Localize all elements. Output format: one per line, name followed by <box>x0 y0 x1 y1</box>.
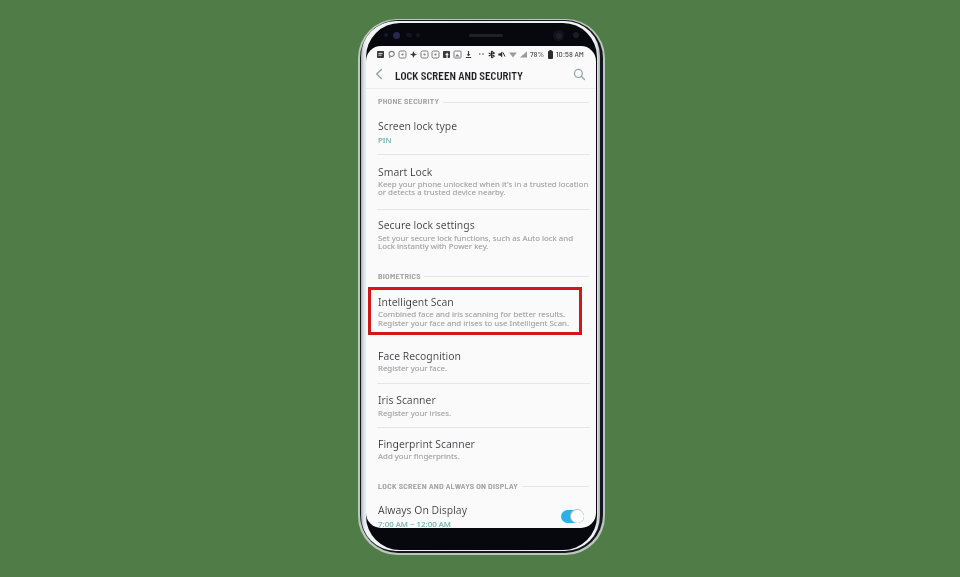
staticText: 7:00 AM ~ 12:00 AM <box>378 519 451 528</box>
staticText: Set your secure lock functions, such as … <box>378 233 574 244</box>
staticText: Keep your phone unlocked when it's in a … <box>378 179 589 190</box>
button[interactable]: Smart Lock <box>366 155 596 209</box>
staticText: Intelligent Scan <box>378 295 454 309</box>
staticText: or detects a trusted device nearby. <box>378 187 506 198</box>
staticText: PHONE SECURITY <box>378 96 440 106</box>
staticText: LOCK SCREEN AND SECURITY <box>395 69 524 82</box>
button[interactable]: Always On Display <box>366 498 596 528</box>
staticText: Screen lock type <box>378 119 458 133</box>
staticText: Iris Scanner <box>378 393 436 407</box>
button[interactable]: Screen lock type <box>366 112 596 154</box>
staticText: PIN <box>378 135 392 146</box>
staticText: Add your fingerprints. <box>378 451 460 462</box>
button[interactable]: Face Recognition <box>366 336 596 383</box>
staticText: Fingerprint Scanner <box>378 437 475 451</box>
staticText: Register your face and irises to use Int… <box>378 318 570 329</box>
button[interactable]: Back <box>366 59 392 89</box>
button[interactable]: Secure lock settings <box>366 210 596 272</box>
button[interactable]: Iris Scanner <box>366 384 596 427</box>
staticText: Register your irises. <box>378 408 452 419</box>
staticText: 78% <box>530 49 545 59</box>
staticText: Smart Lock <box>378 165 433 179</box>
button[interactable]: Search <box>566 59 592 89</box>
button[interactable]: Always On Display toggle <box>561 509 584 523</box>
staticText: LOCK SCREEN AND ALWAYS ON DISPLAY <box>378 481 519 491</box>
button[interactable]: Intelligent Scan <box>366 287 596 334</box>
staticText: 10:58 AM <box>556 49 584 59</box>
staticText: Lock instantly with Power key. <box>378 241 489 252</box>
staticText: Secure lock settings <box>378 218 475 232</box>
staticText: Always On Display <box>378 503 467 517</box>
button[interactable]: Fingerprint Scanner <box>366 428 596 478</box>
staticText: Register your face. <box>378 363 448 374</box>
staticText: BIOMETRICS <box>378 271 421 281</box>
staticText: Combined face and iris scanning for bett… <box>378 309 566 320</box>
staticText: Face Recognition <box>378 349 461 363</box>
